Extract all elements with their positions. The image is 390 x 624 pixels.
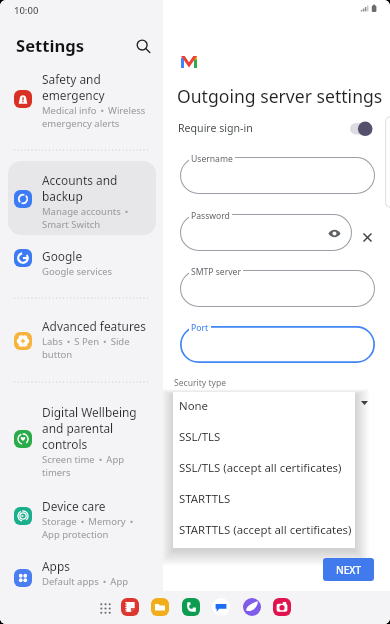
- button[interactable]: Digital Wellbeing: [8, 399, 156, 478]
- staticText: Password: [191, 210, 230, 219]
- button[interactable]: messages: [210, 596, 232, 618]
- staticText: SSL/TLS (accept all certificates): [179, 460, 342, 476]
- staticText: button: [42, 348, 73, 361]
- button[interactable]: Apps: [8, 553, 156, 601]
- staticText: Device care: [42, 498, 106, 514]
- staticText: 10:00: [14, 4, 39, 17]
- staticText: Screen time • App: [42, 453, 125, 466]
- button[interactable]: Clear: [355, 225, 379, 249]
- staticText: Google: [42, 248, 83, 264]
- button[interactable]: notes: [119, 596, 141, 618]
- button[interactable]: Device care: [8, 493, 156, 541]
- staticText: Medical info • Wireless: [42, 104, 146, 117]
- button[interactable]: Google: [8, 243, 156, 278]
- staticText: STARTTLS: [179, 491, 231, 507]
- staticText: Default apps • App: [42, 575, 129, 588]
- staticText: timers: [42, 466, 71, 479]
- staticText: Security type: [174, 377, 227, 389]
- staticText: SMTP server: [191, 266, 241, 275]
- button[interactable]: STARTTLS (accept all certificates): [173, 516, 355, 547]
- staticText: SSL/TLS: [179, 429, 221, 445]
- staticText: Apps: [42, 558, 70, 574]
- staticText: Digital Wellbeing: [42, 404, 137, 420]
- button[interactable]: STARTTLS: [173, 485, 355, 516]
- staticText: Safety and: [42, 71, 101, 87]
- staticText: controls: [42, 436, 88, 452]
- staticText: emergency: [42, 87, 105, 103]
- staticText: NEXT: [336, 563, 362, 577]
- staticText: App protection: [42, 528, 109, 541]
- button[interactable]: All apps: [94, 597, 116, 619]
- staticText: backup: [42, 188, 83, 204]
- staticText: Username: [191, 153, 233, 162]
- staticText: STARTTLS (accept all certificates): [179, 522, 352, 538]
- staticText: Port: [191, 322, 209, 331]
- staticText: emergency alerts: [42, 117, 120, 130]
- button[interactable]: None: [173, 392, 355, 423]
- button[interactable]: camera: [271, 596, 293, 618]
- button[interactable]: files: [149, 596, 171, 618]
- button[interactable]: Accounts and: [8, 167, 156, 231]
- staticText: Advanced features: [42, 318, 146, 334]
- staticText: and parental: [42, 420, 114, 436]
- staticText: None: [179, 398, 209, 414]
- staticText: Storage • Memory •: [42, 515, 134, 528]
- staticText: Labs • S Pen • Side: [42, 335, 130, 348]
- staticText: Smart Switch: [42, 218, 101, 231]
- staticText: Outgoing server settings: [177, 84, 383, 108]
- staticText: Google services: [42, 265, 113, 278]
- staticText: Accounts and: [42, 172, 118, 188]
- button[interactable]: phone: [180, 596, 202, 618]
- button[interactable]: Advanced features: [8, 313, 156, 361]
- staticText: Manage accounts •: [42, 205, 129, 218]
- button[interactable]: NEXT: [323, 558, 374, 581]
- button[interactable]: Require sign-in: [349, 119, 375, 139]
- staticText: Settings: [16, 34, 85, 57]
- button[interactable]: SSL/TLS (accept all certificates): [173, 454, 355, 485]
- button[interactable]: Search: [130, 33, 156, 59]
- button[interactable]: Safety and: [8, 66, 156, 130]
- button[interactable]: Show password: [325, 224, 343, 242]
- button[interactable]: internet: [241, 596, 263, 618]
- staticText: Require sign-in: [178, 121, 253, 135]
- button[interactable]: SSL/TLS: [173, 423, 355, 454]
